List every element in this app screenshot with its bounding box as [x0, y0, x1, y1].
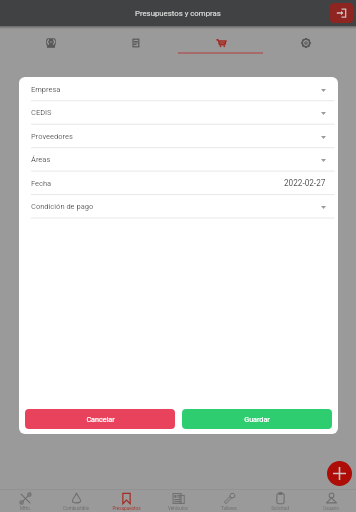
staticText: Mtto. [20, 506, 31, 511]
staticText: Usuario [323, 506, 339, 511]
button[interactable]: Proveedores [19, 124, 338, 147]
button[interactable]: Cerrar sesion [330, 3, 353, 23]
staticText: 2022-02-27 [284, 178, 326, 188]
button[interactable]: Solicitud [254, 490, 305, 512]
button[interactable]: Combustible [50, 490, 101, 512]
staticText: Empresa [31, 85, 61, 94]
button[interactable]: Tab 4 [263, 26, 348, 56]
button[interactable]: Fecha [19, 171, 338, 194]
button[interactable]: Condición de pago [19, 194, 338, 217]
button[interactable]: Cancelar [25, 409, 175, 429]
staticText: Presupuestos [112, 506, 141, 511]
button[interactable]: Vehículos [152, 490, 203, 512]
button[interactable]: Guardar [182, 409, 332, 429]
staticText: CEDIS [31, 108, 52, 117]
button[interactable]: CEDIS [19, 100, 338, 123]
staticText: Presupuestos y compras [135, 9, 221, 18]
button[interactable]: Tab 3 [178, 26, 263, 56]
button[interactable]: Empresa [19, 77, 338, 100]
button[interactable]: Presupuestos [101, 490, 152, 512]
staticText: Proveedores [31, 132, 73, 141]
staticText: Áreas [31, 155, 51, 164]
button[interactable]: Talleres [203, 490, 254, 512]
button[interactable]: Agregar [327, 461, 352, 486]
staticText: Condición de pago [31, 202, 94, 211]
button[interactable]: Áreas [19, 147, 338, 170]
staticText: Combustible [63, 506, 89, 511]
button[interactable]: Usuario [305, 490, 356, 512]
staticText: Talleres [221, 506, 237, 511]
staticText: Vehículos [168, 506, 188, 511]
button[interactable]: Tab 1 [8, 26, 93, 56]
staticText: Fecha [31, 179, 52, 188]
staticText: Solicitud [271, 506, 289, 511]
staticText: Cancelar [86, 415, 115, 423]
staticText: Guardar [244, 415, 270, 423]
button[interactable]: Mtto. [0, 490, 50, 512]
button[interactable]: Tab 2 [93, 26, 178, 56]
